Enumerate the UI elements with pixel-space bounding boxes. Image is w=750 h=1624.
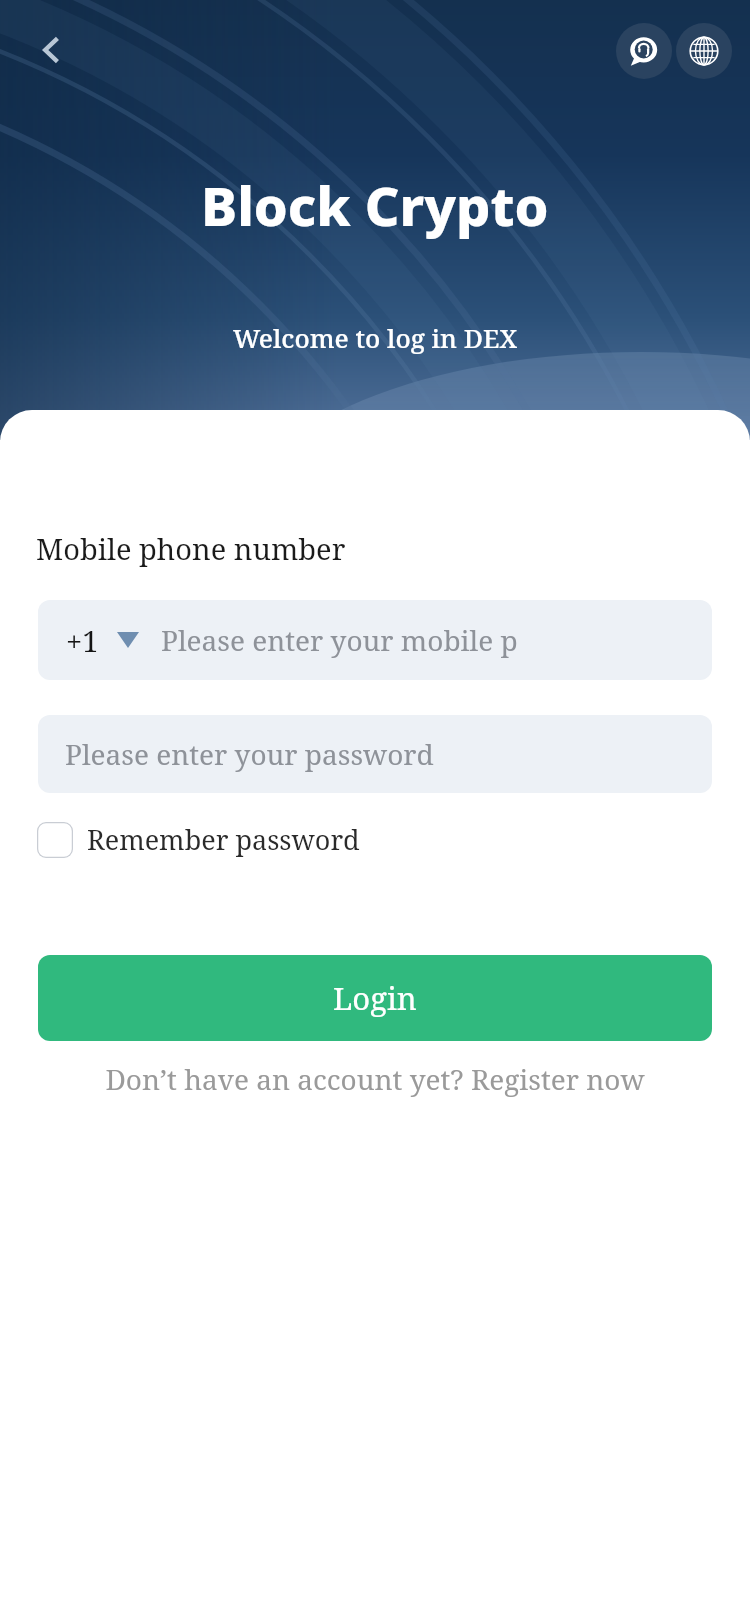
staticText: Block Crypto (201, 168, 549, 242)
button[interactable]: Language (676, 23, 732, 79)
button[interactable]: Don’t have an account yet? Register now (0, 1060, 750, 1098)
button[interactable]: +1 (38, 600, 712, 680)
staticText: Welcome to log in DEX (233, 320, 518, 355)
staticText: Login (333, 977, 417, 1019)
staticText: Remember password (87, 821, 360, 858)
button[interactable]: Login (38, 955, 712, 1041)
staticText: Mobile phone number (36, 529, 346, 568)
staticText: Please enter your password (65, 735, 434, 773)
staticText: Don’t have an account yet? Register now (105, 1060, 645, 1098)
staticText: +1 (66, 621, 99, 660)
button[interactable]: Please enter your password (38, 715, 712, 793)
staticText: Please enter your mobile p (161, 621, 518, 659)
button[interactable]: Customer support (616, 23, 672, 79)
button[interactable]: Back (18, 16, 86, 84)
button[interactable]: Remember password (37, 821, 360, 858)
